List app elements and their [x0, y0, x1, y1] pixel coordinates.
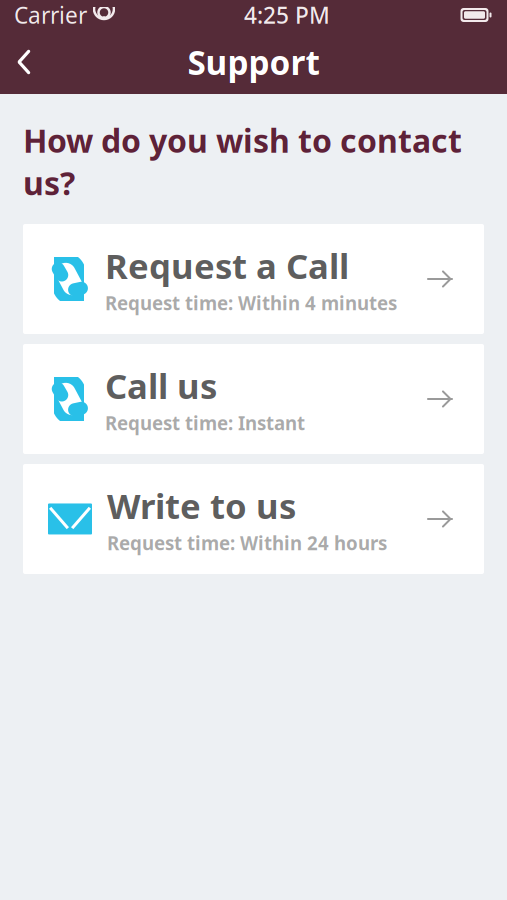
- button[interactable]: Request a Call: [23, 224, 484, 334]
- button[interactable]: Back: [0, 38, 48, 86]
- staticText: 4:25 PM: [244, 0, 330, 30]
- staticText: Request time: Instant: [105, 411, 305, 435]
- staticText: Write to us: [107, 483, 296, 529]
- staticText: Support: [187, 40, 319, 84]
- button[interactable]: Call us: [23, 344, 484, 454]
- button[interactable]: Write to us: [23, 464, 484, 574]
- staticText: Request time: Within 24 hours: [107, 531, 387, 555]
- staticText: Request time: Within 4 minutes: [105, 291, 397, 315]
- staticText: Call us: [105, 363, 217, 409]
- staticText: How do you wish to contact us?: [23, 119, 462, 204]
- staticText: Carrier: [14, 0, 87, 30]
- staticText: Request a Call: [105, 243, 349, 289]
